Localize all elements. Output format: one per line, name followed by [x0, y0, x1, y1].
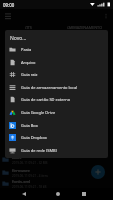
- button[interactable]: Home: [53, 189, 63, 199]
- staticText: /ITS: [25, 25, 32, 30]
- staticText: Guia Dropbox: [21, 135, 47, 140]
- button[interactable]: Back: [19, 189, 29, 199]
- button[interactable]: Guia raiz: [5, 69, 108, 80]
- staticText: Guia de armazenamento local: [21, 85, 78, 90]
- button[interactable]: Menu: [2, 10, 13, 21]
- button[interactable]: Pasta: [5, 44, 108, 55]
- button[interactable]: Arquivo: [5, 57, 108, 68]
- staticText: Guia raiz: [21, 72, 38, 77]
- staticText: 2019-06-11 09:21 - 4 itens: [12, 174, 48, 178]
- button[interactable]: boot: [2, 153, 113, 166]
- button[interactable]: Guia de armazenamento local: [5, 82, 108, 93]
- staticText: firmware: [12, 168, 30, 174]
- button[interactable]: Guia Google Drive: [5, 107, 108, 118]
- staticText: Guia Google Drive: [21, 110, 56, 115]
- staticText: Novo...: [10, 35, 27, 42]
- staticText: boot: [12, 155, 22, 161]
- staticText: fonts.xml: [12, 179, 31, 185]
- button[interactable]: /ITS: [0, 22, 56, 32]
- staticText: 09:00: [3, 2, 15, 8]
- button[interactable]: Guia Box: [5, 120, 108, 131]
- staticText: Pasta: [21, 47, 32, 52]
- staticText: Guia de cartão SD externo: [21, 97, 71, 102]
- button[interactable]: Guia Dropbox: [5, 132, 108, 143]
- staticText: Guia Box: [21, 123, 38, 128]
- button[interactable]: Guia de cartão SD externo: [5, 94, 108, 105]
- staticText: 2019-06-11 09:21 - 32 MB: [12, 161, 48, 165]
- staticText: 2019-06-11 09:21 - 18 kB: [12, 185, 47, 188]
- staticText: Guia de rede (SMB): [21, 148, 57, 153]
- button[interactable]: Guia de rede (SMB): [5, 145, 108, 156]
- button[interactable]: firmware: [2, 166, 113, 179]
- button[interactable]: /ARMAZENAMENTO: [56, 22, 113, 32]
- button[interactable]: Recents: [79, 189, 89, 199]
- button[interactable]: Add: [91, 165, 105, 179]
- staticText: /ARMAZENAMENTO: [67, 25, 103, 30]
- button[interactable]: fonts.xml: [2, 179, 113, 188]
- staticText: Arquivo: [21, 60, 36, 65]
